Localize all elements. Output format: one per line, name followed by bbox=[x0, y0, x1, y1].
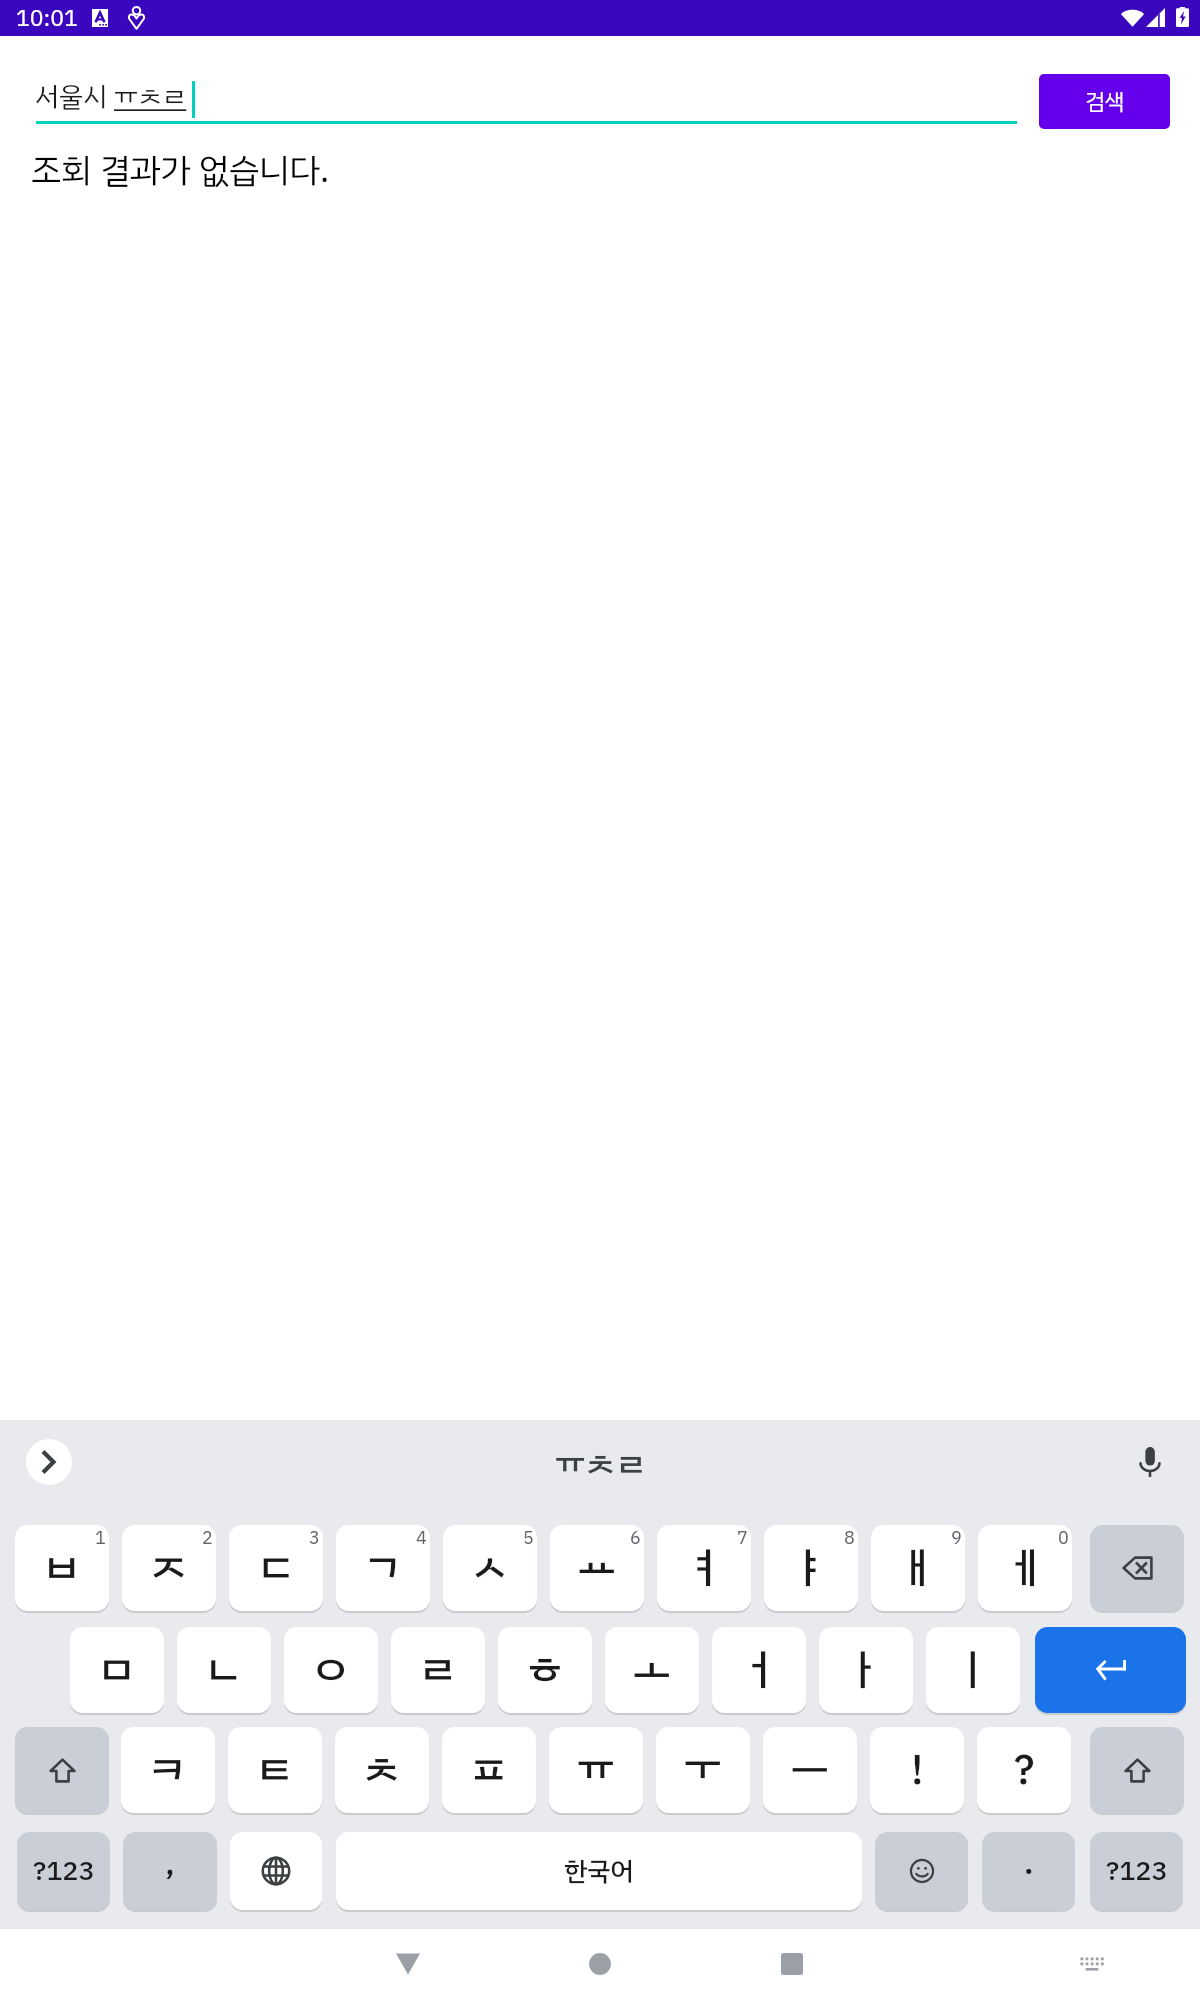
staticText: ㄱ bbox=[364, 1536, 402, 1599]
staticText: ㅠㅊㄹ bbox=[555, 1439, 646, 1483]
staticText: ?123 bbox=[1106, 1851, 1168, 1892]
button[interactable]: ㅡ bbox=[763, 1727, 857, 1813]
button[interactable]: Backspace bbox=[1090, 1525, 1184, 1611]
button[interactable]: ㅐ bbox=[871, 1525, 965, 1611]
staticText: 3 bbox=[309, 1525, 320, 1551]
staticText: ? bbox=[1014, 1738, 1035, 1801]
staticText: 9 bbox=[951, 1525, 962, 1551]
staticText: 검색 bbox=[1085, 85, 1125, 118]
staticText: ㄹ bbox=[419, 1638, 457, 1701]
staticText: ㅑ bbox=[792, 1536, 830, 1599]
staticText: ㅍ bbox=[470, 1738, 508, 1801]
button[interactable]: ㅌ bbox=[228, 1727, 322, 1813]
staticText: · bbox=[1023, 1846, 1035, 1894]
button[interactable]: Back bbox=[373, 1929, 443, 2000]
staticText: ㅕ bbox=[685, 1536, 723, 1599]
button[interactable]: ㅛ bbox=[550, 1525, 644, 1611]
button[interactable]: ㄹ bbox=[391, 1627, 485, 1713]
staticText: 2 bbox=[202, 1525, 213, 1551]
button[interactable]: ㅓ bbox=[712, 1627, 806, 1713]
button[interactable]: ㅍ bbox=[442, 1727, 536, 1813]
staticText: ㅠ bbox=[577, 1738, 615, 1801]
staticText: ㅏ bbox=[847, 1638, 885, 1701]
staticText: 7 bbox=[737, 1525, 748, 1551]
button[interactable]: Shift bbox=[1090, 1727, 1184, 1813]
staticText: ㄴ bbox=[205, 1638, 243, 1701]
staticText: 5 bbox=[523, 1525, 534, 1551]
button[interactable]: ?123 bbox=[17, 1832, 110, 1910]
staticText: 10:01 bbox=[16, 1, 78, 36]
button[interactable]: ?123 bbox=[1090, 1832, 1183, 1910]
button[interactable]: Emoji bbox=[875, 1832, 968, 1910]
staticText: ㅎ bbox=[526, 1638, 564, 1701]
button[interactable]: ㅗ bbox=[605, 1627, 699, 1713]
button[interactable]: ㅕ bbox=[657, 1525, 751, 1611]
staticText: 한국어 bbox=[564, 1852, 634, 1891]
button[interactable]: Recents bbox=[757, 1929, 827, 2000]
staticText: 0 bbox=[1058, 1525, 1069, 1551]
staticText: ㅠㅊㄹ bbox=[114, 77, 187, 118]
button[interactable]: ㅁ bbox=[70, 1627, 164, 1713]
button[interactable]: · bbox=[982, 1832, 1075, 1910]
staticText: ㅋ bbox=[149, 1738, 187, 1801]
button[interactable]: ㅋ bbox=[121, 1727, 215, 1813]
button[interactable]: ㅜ bbox=[656, 1727, 750, 1813]
staticText: 4 bbox=[416, 1525, 427, 1551]
staticText: ! bbox=[911, 1738, 924, 1801]
staticText: ㅡ bbox=[791, 1738, 829, 1801]
button[interactable]: ㅏ bbox=[819, 1627, 913, 1713]
button[interactable]: ㅎ bbox=[498, 1627, 592, 1713]
staticText: ㅅ bbox=[471, 1536, 509, 1599]
staticText: ㅈ bbox=[150, 1536, 188, 1599]
staticText: ㅛ bbox=[578, 1536, 616, 1599]
staticText: 조회 결과가 없습니다. bbox=[31, 145, 330, 196]
staticText: 6 bbox=[630, 1525, 641, 1551]
button[interactable]: Voice input bbox=[1133, 1441, 1167, 1483]
button[interactable]: 한국어 bbox=[336, 1832, 862, 1910]
button[interactable]: ㅈ bbox=[122, 1525, 216, 1611]
button[interactable]: ㅇ bbox=[284, 1627, 378, 1713]
staticText: ㅗ bbox=[633, 1638, 671, 1701]
button[interactable]: Home bbox=[565, 1929, 635, 2000]
button[interactable]: Enter bbox=[1035, 1627, 1186, 1713]
staticText: ㅜ bbox=[684, 1738, 722, 1801]
button[interactable]: Change language bbox=[230, 1832, 322, 1910]
staticText: ㅊ bbox=[363, 1738, 401, 1801]
button[interactable]: Shift bbox=[15, 1727, 109, 1813]
staticText: ㅁ bbox=[98, 1638, 136, 1701]
button[interactable]: ? bbox=[977, 1727, 1071, 1813]
button[interactable]: ㅔ bbox=[978, 1525, 1072, 1611]
staticText: ㄷ bbox=[257, 1536, 295, 1599]
button[interactable]: ㅅ bbox=[443, 1525, 537, 1611]
button[interactable]: ㅊ bbox=[335, 1727, 429, 1813]
button[interactable]: ㄷ bbox=[229, 1525, 323, 1611]
staticText: ㅔ bbox=[1006, 1536, 1044, 1599]
button[interactable]: ㅠ bbox=[549, 1727, 643, 1813]
button[interactable]: ㅣ bbox=[926, 1627, 1020, 1713]
staticText: ㅂ bbox=[43, 1536, 81, 1599]
staticText: ㅣ bbox=[954, 1638, 992, 1701]
staticText: 서울시 bbox=[35, 77, 114, 118]
button[interactable]: ㅂ bbox=[15, 1525, 109, 1611]
staticText: 1 bbox=[95, 1525, 106, 1551]
staticText: ㅐ bbox=[899, 1536, 937, 1599]
button[interactable]: , bbox=[123, 1832, 217, 1910]
button[interactable]: ! bbox=[870, 1727, 964, 1813]
button[interactable]: ㅑ bbox=[764, 1525, 858, 1611]
staticText: 8 bbox=[844, 1525, 855, 1551]
button[interactable]: ㄴ bbox=[177, 1627, 271, 1713]
staticText: , bbox=[165, 1837, 175, 1888]
staticText: ?123 bbox=[33, 1851, 95, 1892]
button[interactable]: Switch keyboard bbox=[1057, 1929, 1127, 2000]
button[interactable]: ㄱ bbox=[336, 1525, 430, 1611]
button[interactable]: Expand suggestions bbox=[26, 1439, 72, 1485]
staticText: ㅌ bbox=[256, 1738, 294, 1801]
staticText: ㅓ bbox=[740, 1638, 778, 1701]
button[interactable]: 검색 bbox=[1039, 74, 1170, 129]
staticText: ㅇ bbox=[312, 1638, 350, 1701]
